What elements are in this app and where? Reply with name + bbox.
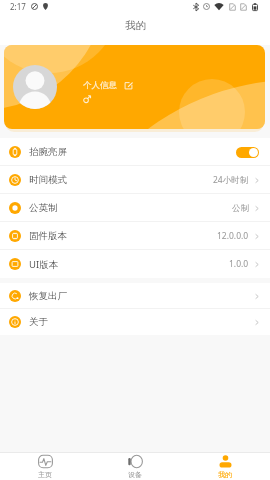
button[interactable]: 主页	[0, 453, 90, 479]
staticText: 12.0.0.0	[217, 230, 249, 242]
staticText: 抬腕亮屏	[29, 146, 67, 158]
button[interactable]: 固件版本	[0, 222, 270, 250]
button[interactable]: Toggle raise to wake	[236, 147, 259, 158]
staticText: 固件版本	[29, 230, 67, 242]
staticText: 我的	[218, 470, 232, 479]
button[interactable]: 公英制	[0, 194, 270, 222]
staticText: 关于	[29, 316, 48, 328]
staticText: 恢复出厂	[29, 290, 67, 302]
button[interactable]: 时间模式	[0, 166, 270, 194]
button[interactable]: 个人信息	[4, 45, 265, 129]
button[interactable]: 抬腕亮屏	[0, 138, 270, 166]
staticText: 公英制	[29, 202, 58, 214]
staticText: UI版本	[29, 258, 59, 271]
button[interactable]: 设备	[90, 453, 180, 479]
button[interactable]: 恢复出厂	[0, 283, 270, 309]
staticText: 2:17	[10, 1, 26, 12]
button[interactable]: Edit profile	[124, 81, 133, 90]
staticText: 主页	[38, 470, 52, 479]
staticText: 设备	[128, 470, 142, 479]
staticText: 1.0.0	[229, 258, 249, 270]
staticText: 公制	[232, 203, 249, 214]
button[interactable]: 关于	[0, 309, 270, 335]
button[interactable]: UI版本	[0, 250, 270, 278]
staticText: 个人信息	[83, 80, 117, 91]
staticText: 时间模式	[29, 174, 67, 186]
staticText: 我的	[125, 19, 146, 32]
button[interactable]: 我的	[180, 453, 270, 479]
staticText: 24小时制	[213, 174, 249, 186]
